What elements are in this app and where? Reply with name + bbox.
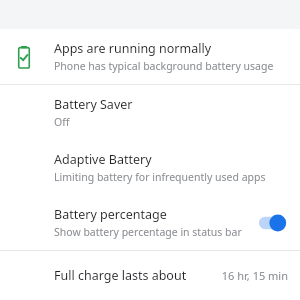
staticText: Apps are running normally [54, 40, 212, 57]
button[interactable]: Battery percentage toggle, on [256, 210, 292, 236]
button[interactable]: Battery percentage [0, 195, 300, 250]
staticText: Show battery percentage in status bar [54, 225, 242, 239]
staticText: Phone has typical background battery usa… [54, 59, 274, 73]
button[interactable]: Battery Saver [0, 85, 300, 140]
staticText: 16 hr, 15 min [221, 268, 288, 283]
staticText: Battery percentage [54, 206, 167, 223]
staticText: Adaptive Battery [54, 151, 152, 168]
staticText: Off [54, 115, 70, 129]
button[interactable]: Full charge lasts about [0, 251, 300, 299]
staticText: Battery Saver [54, 96, 133, 113]
staticText: Limiting battery for infrequently used a… [54, 170, 266, 184]
staticText: Full charge lasts about [54, 267, 221, 284]
button[interactable]: Apps are running normally [0, 29, 300, 84]
button[interactable]: Adaptive Battery [0, 140, 300, 195]
